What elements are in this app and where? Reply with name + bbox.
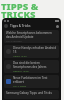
button[interactable]: Welche Smartphones bekommen das Android …	[4, 30, 59, 43]
staticText: Tipps & Tricks	[10, 24, 31, 28]
staticText: Welche Smartphones bekommen das Android …	[6, 31, 57, 38]
button[interactable]: Profile	[4, 23, 59, 29]
staticText: TRICKS	[1, 8, 36, 21]
staticText: Neue Funktionen im Test erklaert	[13, 76, 57, 83]
button[interactable]: Neue Funktionen im Test erklaert	[4, 75, 59, 88]
button[interactable]: Diese Handys erhalten Android 15	[4, 45, 59, 58]
staticText: Gestern 18:00	[13, 69, 29, 72]
other: Profile	[4, 24, 8, 28]
staticText: TIPPS &	[1, 0, 39, 13]
staticText: Das sind die besten Smartphones des Jahr…	[13, 61, 57, 68]
staticText: Vor 2 Stunden	[6, 39, 22, 42]
staticText: Diese Handys erhalten Android 15	[13, 46, 57, 53]
staticText: Samsung Galaxy Tipps und Tricks	[6, 91, 52, 95]
button[interactable]: Samsung Galaxy Tipps und Tricks	[4, 90, 59, 99]
staticText: Heute 12:30	[13, 54, 27, 57]
button[interactable]: Das sind die besten Smartphones des Jahr…	[4, 60, 59, 73]
other: Search	[56, 25, 59, 28]
staticText: Vor 3 Tagen	[13, 84, 27, 87]
